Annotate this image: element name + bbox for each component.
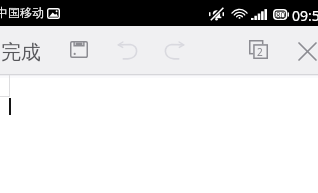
staticText: 80 <box>276 10 286 21</box>
staticText: 09:5 <box>292 6 318 25</box>
button[interactable]: Undo <box>117 42 138 60</box>
button[interactable]: Save <box>70 41 88 58</box>
staticText: 2 <box>257 45 263 59</box>
button[interactable]: Close <box>298 42 317 61</box>
button[interactable]: Redo <box>164 42 185 60</box>
staticText: 完成 <box>1 40 41 65</box>
button[interactable]: Layers <box>249 40 268 59</box>
staticText: 中国移动 <box>0 5 44 20</box>
button[interactable]: 完成 <box>0 26 44 74</box>
